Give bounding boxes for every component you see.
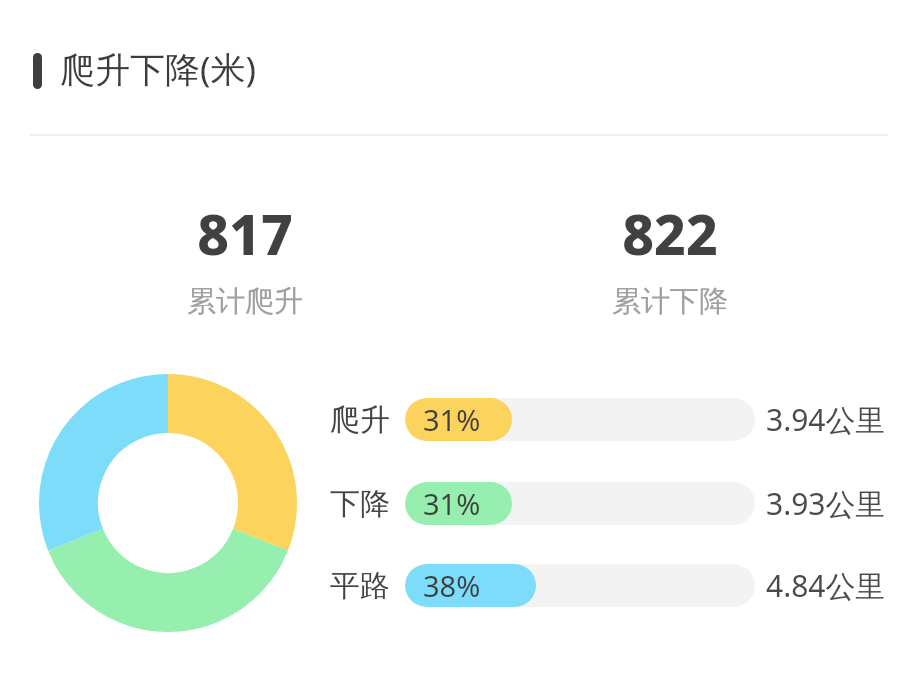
staticText: 38% [423,566,481,605]
staticText: 3.94公里 [766,399,886,440]
staticText: 累计爬升 [187,283,303,320]
staticText: 累计下降 [612,283,728,320]
staticText: 31% [423,484,481,523]
staticText: 822 [622,196,718,271]
staticText: 31% [423,400,481,439]
staticText: 4.84公里 [766,565,886,606]
button[interactable]: 平路 [330,564,890,607]
button[interactable]: 817 [95,196,395,320]
staticText: 平路 [330,567,390,605]
button[interactable]: 爬升 [330,398,890,441]
button[interactable]: 下降 [330,482,890,525]
staticText: 3.93公里 [766,483,886,524]
staticText: 下降 [330,485,390,523]
staticText: 817 [197,196,293,271]
staticText: 爬升下降(米) [60,45,257,93]
staticText: 爬升 [330,401,390,439]
button[interactable]: 822 [520,196,820,320]
